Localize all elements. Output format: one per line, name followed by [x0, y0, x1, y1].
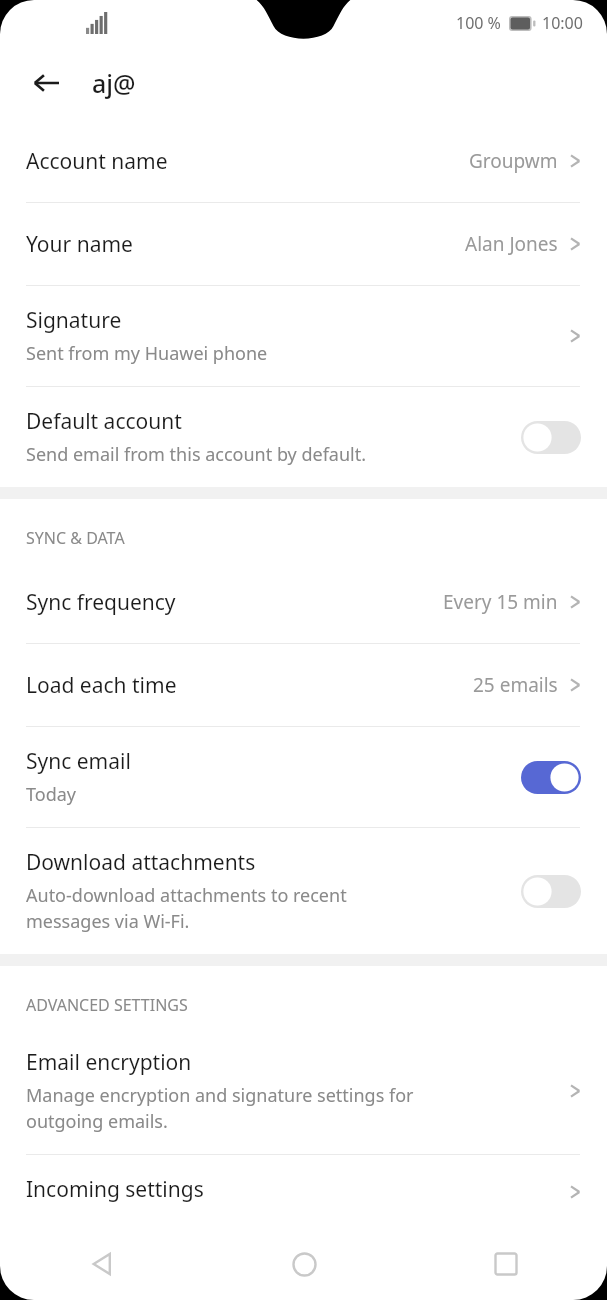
button[interactable]: Load each time [0, 644, 607, 726]
button[interactable]: Off [521, 875, 581, 908]
staticText: Default account [26, 407, 182, 436]
staticText: Manage encryption and signature settings… [26, 1083, 414, 1134]
staticText: Account name [26, 147, 469, 176]
button[interactable]: Back [0, 1228, 203, 1300]
button[interactable]: Download attachments [0, 828, 607, 954]
button[interactable]: Your name [0, 203, 607, 285]
button[interactable]: Back [22, 59, 70, 107]
staticText: 10:00 [542, 12, 583, 34]
staticText: 100 % [456, 12, 501, 34]
button[interactable]: Recents [405, 1228, 607, 1300]
button[interactable]: Sync email [0, 727, 607, 827]
button[interactable]: Home [203, 1228, 405, 1300]
button[interactable]: On [521, 761, 581, 794]
staticText: Load each time [26, 671, 473, 700]
staticText: Download attachments [26, 848, 256, 877]
button[interactable]: Incoming settings [0, 1155, 607, 1228]
staticText: Send email from this account by default. [26, 442, 367, 467]
staticText: Email encryption [26, 1048, 192, 1077]
staticText: Today [26, 782, 76, 807]
staticText: SYNC & DATA [26, 527, 125, 549]
staticText: Signature [26, 306, 122, 335]
staticText: Auto-download attachments to recent mess… [26, 883, 347, 934]
staticText: aj@ [92, 66, 136, 100]
staticText: Your name [26, 230, 465, 259]
button[interactable]: Signature [0, 286, 607, 386]
button[interactable]: Email encryption [0, 1028, 607, 1154]
staticText: ADVANCED SETTINGS [26, 994, 188, 1016]
staticText: Sync email [26, 747, 131, 776]
staticText: Sent from my Huawei phone [26, 341, 268, 366]
button[interactable]: Sync frequency [0, 561, 607, 643]
staticText: Incoming settings [26, 1175, 204, 1204]
button[interactable]: Default account [0, 387, 607, 487]
staticText: 25 emails [473, 672, 558, 698]
staticText: Alan Jones [465, 231, 558, 257]
button[interactable]: Off [521, 421, 581, 454]
button[interactable]: Account name [0, 120, 607, 202]
staticText: Sync frequency [26, 588, 443, 617]
staticText: Groupwm [469, 148, 558, 174]
staticText: Every 15 min [443, 589, 558, 615]
